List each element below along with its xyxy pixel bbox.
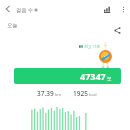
staticText: 오늘 xyxy=(7,22,18,29)
staticText: 걸음 수 xyxy=(16,6,33,13)
staticText: 최고 기록 xyxy=(84,44,101,49)
button[interactable]: More options xyxy=(116,2,130,16)
staticText: 1925 xyxy=(73,89,88,98)
button[interactable]: Back xyxy=(0,1,16,17)
staticText: 보 xyxy=(107,76,112,82)
staticText: kcal xyxy=(89,92,97,98)
staticText: 47347 xyxy=(80,70,106,82)
button[interactable]: 걸음 수 xyxy=(16,6,38,13)
staticText: km xyxy=(55,92,62,98)
button[interactable]: Share xyxy=(111,24,123,36)
staticText: 37.39 xyxy=(37,89,54,98)
button[interactable]: Statistics xyxy=(100,2,114,16)
